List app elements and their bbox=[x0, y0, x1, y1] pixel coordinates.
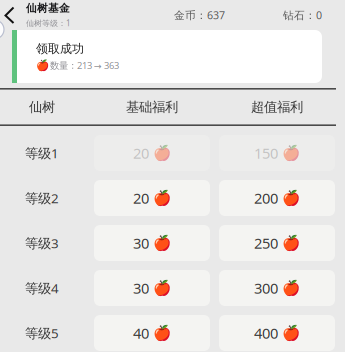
staticText: 🍎 bbox=[153, 325, 171, 341]
staticText: 🍎 bbox=[36, 59, 49, 71]
button[interactable]: 返回 bbox=[0, 0, 26, 30]
staticText: 等级2 bbox=[25, 189, 59, 207]
staticText: 🍎 bbox=[282, 145, 300, 161]
staticText: 300 bbox=[254, 278, 278, 298]
staticText: 仙树 bbox=[29, 99, 55, 115]
staticText: 领取成功 bbox=[36, 41, 84, 56]
button[interactable]: 30 bbox=[94, 225, 210, 261]
staticText: 🍎 bbox=[282, 235, 300, 251]
staticText: 🍎 bbox=[282, 325, 300, 341]
staticText: 钻石：0 bbox=[283, 8, 322, 22]
staticText: 基础福利 bbox=[126, 99, 178, 115]
button[interactable]: 200 bbox=[219, 180, 335, 216]
button[interactable]: 40 bbox=[94, 315, 210, 351]
staticText: 超值福利 bbox=[251, 99, 303, 115]
staticText: 200 bbox=[254, 188, 278, 208]
staticText: 20 bbox=[133, 188, 149, 208]
button[interactable]: 20 bbox=[94, 135, 210, 171]
staticText: 400 bbox=[254, 323, 278, 343]
staticText: 150 bbox=[254, 143, 278, 163]
staticText: 仙树等级：1 bbox=[26, 18, 71, 28]
button[interactable]: 30 bbox=[94, 270, 210, 306]
staticText: 30 bbox=[133, 233, 149, 253]
staticText: 数量：213 → 363 bbox=[50, 59, 119, 72]
staticText: 🍎 bbox=[282, 280, 300, 296]
staticText: 🍎 bbox=[153, 235, 171, 251]
staticText: 仙树基金 bbox=[26, 2, 70, 15]
staticText: 🍎 bbox=[153, 145, 171, 161]
button[interactable]: 250 bbox=[219, 225, 335, 261]
staticText: 🍎 bbox=[153, 190, 171, 206]
staticText: 等级5 bbox=[25, 324, 59, 342]
staticText: 40 bbox=[133, 323, 149, 343]
staticText: 等级4 bbox=[25, 279, 59, 297]
button[interactable]: 300 bbox=[219, 270, 335, 306]
staticText: 20 bbox=[133, 143, 149, 163]
staticText: 等级1 bbox=[25, 144, 59, 162]
button[interactable]: 150 bbox=[219, 135, 335, 171]
staticText: 等级3 bbox=[25, 234, 59, 252]
button[interactable]: 20 bbox=[94, 180, 210, 216]
staticText: 🍎 bbox=[282, 190, 300, 206]
staticText: 🍎 bbox=[153, 280, 171, 296]
button[interactable]: 400 bbox=[219, 315, 335, 351]
staticText: 金币：637 bbox=[174, 8, 225, 22]
staticText: 250 bbox=[254, 233, 278, 253]
staticText: 30 bbox=[133, 278, 149, 298]
